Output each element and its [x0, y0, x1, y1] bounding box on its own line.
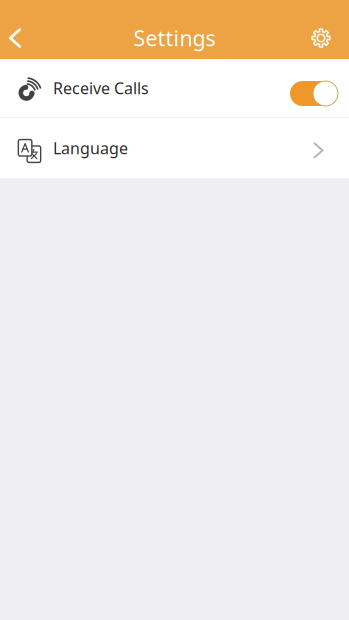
button[interactable]: Settings [306, 19, 336, 57]
staticText: Language [53, 137, 128, 159]
button[interactable]: Language [0, 118, 349, 178]
staticText: Receive Calls [53, 77, 149, 99]
button[interactable]: Back [0, 19, 30, 57]
staticText: Settings [133, 24, 215, 52]
button[interactable]: Receive Calls [0, 59, 349, 117]
